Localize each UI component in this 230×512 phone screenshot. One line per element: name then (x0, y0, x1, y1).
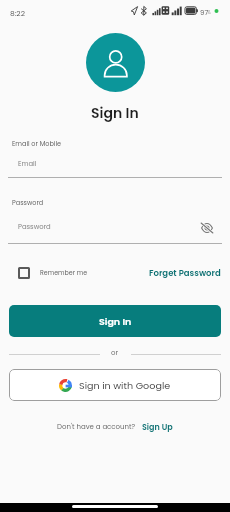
button[interactable]: Remember me (14, 264, 88, 281)
staticText: 97 (200, 8, 209, 18)
staticText: or (111, 348, 119, 358)
staticText: Sign In (99, 315, 132, 328)
staticText: 8:22 (10, 8, 25, 18)
button[interactable]: Sign in with Google (9, 369, 221, 401)
staticText: Password (18, 222, 51, 232)
staticText: % (207, 9, 211, 16)
staticText: Sign in with Google (79, 379, 171, 392)
button[interactable]: Sign Up (142, 422, 173, 433)
staticText: Password (12, 198, 44, 207)
staticText: Email or Mobile (12, 139, 62, 148)
button[interactable]: Sign In (9, 305, 221, 337)
button[interactable]: Show password (199, 220, 215, 236)
staticText: Sign In (91, 103, 139, 123)
button[interactable]: Forget Password (149, 267, 230, 279)
staticText: Don't have a account? (57, 422, 136, 432)
staticText: Remember me (40, 268, 88, 277)
staticText: Email (18, 159, 37, 169)
